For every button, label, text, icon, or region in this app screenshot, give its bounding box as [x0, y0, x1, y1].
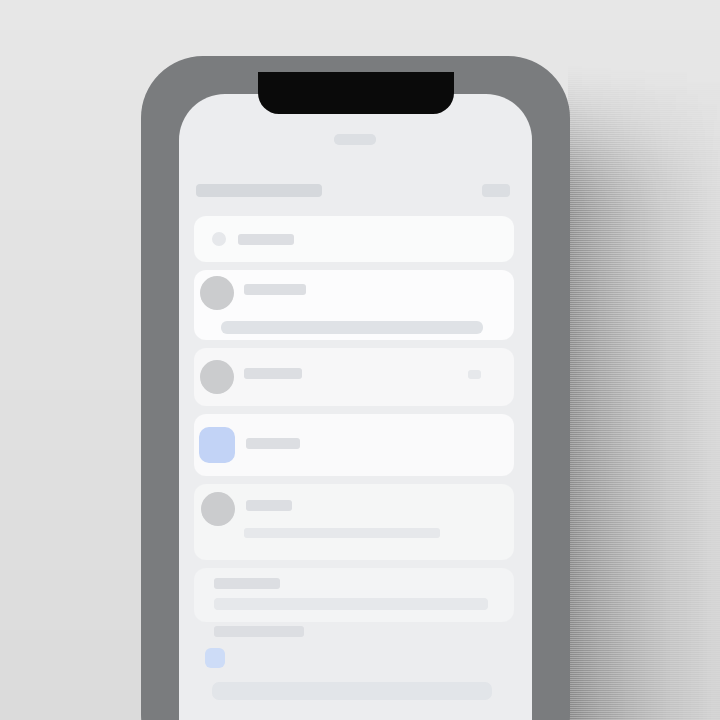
button[interactable]: Notifications — [186, 172, 436, 208]
button[interactable]: Photos backup complete — [194, 484, 514, 560]
button[interactable]: Message from Amelia — [194, 270, 514, 340]
button[interactable]: Today section header — [194, 216, 514, 262]
button[interactable]: System update available — [194, 568, 514, 622]
button[interactable]: Message from Noah — [194, 348, 514, 406]
button[interactable]: Calendar reminder — [194, 414, 514, 476]
button[interactable]: More options — [474, 174, 518, 206]
button[interactable]: Mark all as read — [205, 648, 225, 668]
